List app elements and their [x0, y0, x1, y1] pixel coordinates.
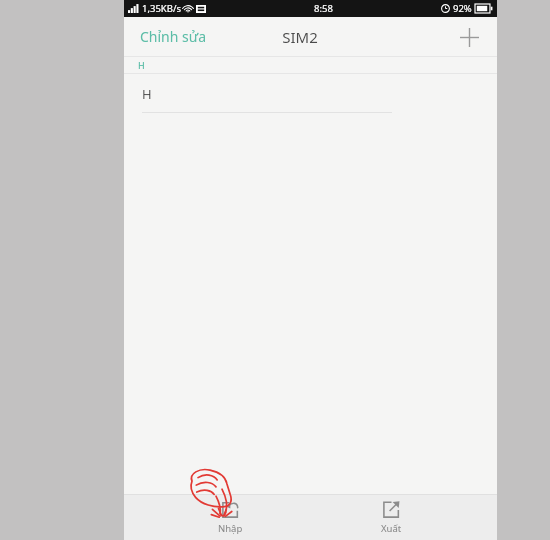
staticText: H	[138, 59, 145, 71]
button[interactable]: Chỉnh sửa	[132, 21, 215, 52]
staticText: SIM2	[282, 27, 318, 47]
staticText: Xuất	[381, 522, 402, 535]
staticText: Nhập	[218, 522, 243, 535]
button[interactable]: Add	[450, 18, 488, 56]
button[interactable]: Nhập	[175, 496, 285, 539]
staticText: 8:58	[314, 2, 333, 15]
button[interactable]: Xuất	[336, 496, 446, 539]
staticText: 92%	[453, 2, 472, 15]
button[interactable]: H	[124, 74, 497, 113]
staticText: Chỉnh sửa	[140, 27, 207, 46]
staticText: 1,35KB/s	[142, 2, 181, 15]
staticText: H	[142, 85, 152, 103]
